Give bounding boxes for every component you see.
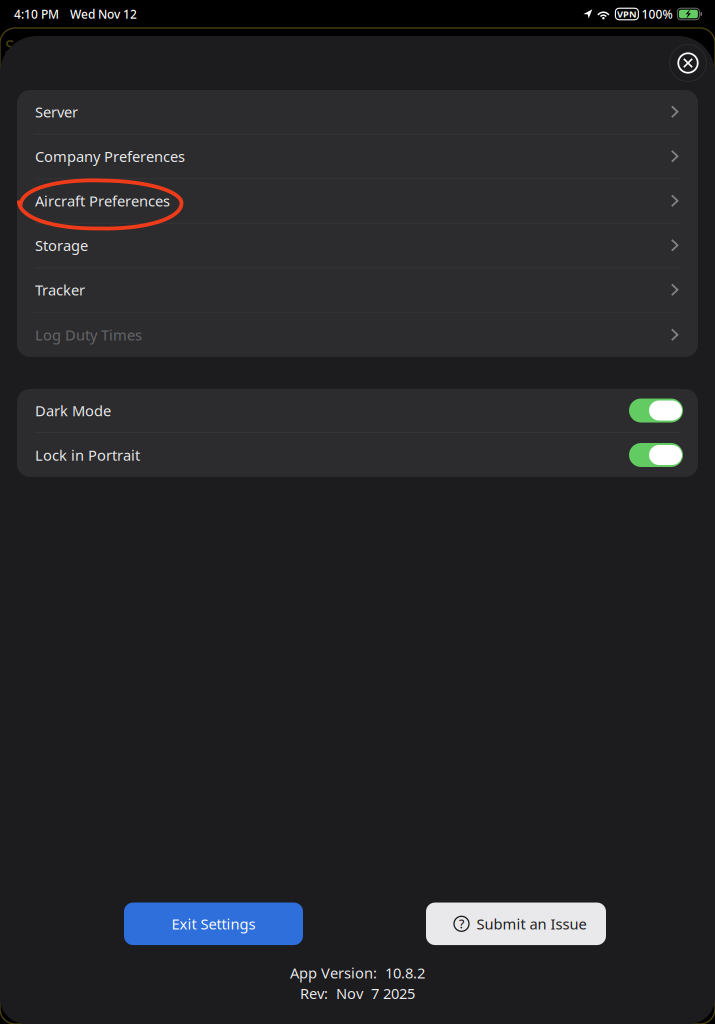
button[interactable]: ? <box>426 902 606 945</box>
staticText: 4:10 PM <box>14 6 59 22</box>
staticText: Wed Nov 12 <box>70 6 137 22</box>
staticText: Submit an Issue <box>476 914 586 934</box>
staticText: Log Duty Times <box>35 325 142 344</box>
staticText: Server <box>35 102 78 121</box>
staticText: Rev: Nov 7 2025 <box>300 983 415 1003</box>
button[interactable]: Server <box>17 90 698 134</box>
button[interactable]: Storage <box>17 223 698 268</box>
button[interactable]: Close <box>669 44 707 82</box>
staticText: VPN <box>617 8 637 20</box>
staticText: Lock in Portrait <box>35 445 140 465</box>
button[interactable]: Exit Settings <box>124 902 303 945</box>
staticText: S <box>5 35 15 58</box>
staticText: ? <box>459 916 464 932</box>
button[interactable]: Aircraft Preferences <box>17 179 698 223</box>
staticText: Dark Mode <box>35 401 111 420</box>
button[interactable]: Company Preferences <box>17 134 698 179</box>
button[interactable]: Tracker <box>17 268 698 312</box>
staticText: Exit Settings <box>171 914 255 934</box>
button[interactable]: Lock in Portrait <box>17 433 698 477</box>
button[interactable]: Dark Mode <box>17 389 698 433</box>
button[interactable]: Log Duty Times <box>17 312 698 357</box>
staticText: Aircraft Preferences <box>35 191 170 210</box>
staticText: App Version: 10.8.2 <box>290 963 425 982</box>
staticText: Storage <box>35 235 88 255</box>
staticText: Company Preferences <box>35 146 185 166</box>
staticText: 100% <box>641 6 672 22</box>
staticText: Tracker <box>35 280 85 299</box>
